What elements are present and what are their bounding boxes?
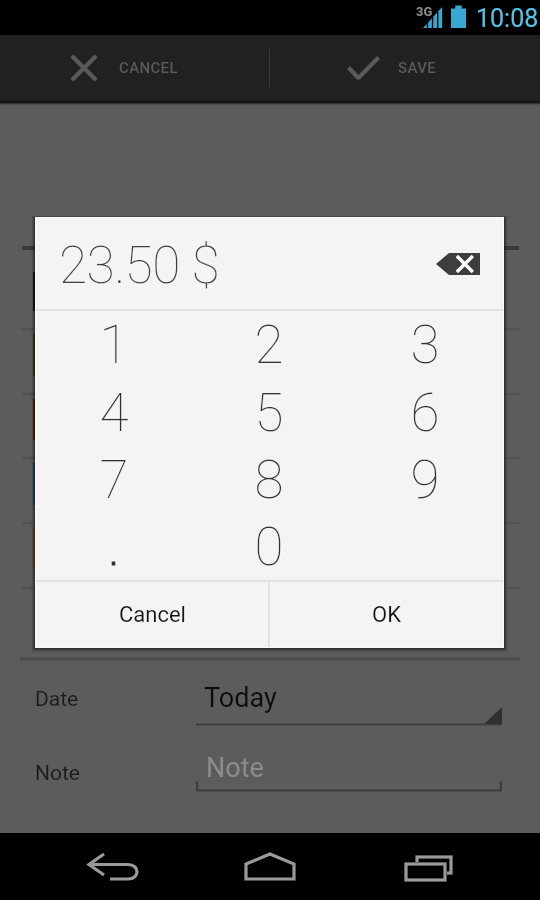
button[interactable]: 3	[347, 311, 503, 379]
button[interactable]	[36, 513, 191, 580]
button[interactable]: 6	[347, 379, 503, 446]
staticText: SAVE	[398, 59, 437, 77]
staticText: CANCEL	[119, 59, 178, 77]
staticText: 8	[254, 449, 284, 511]
staticText: Note	[206, 752, 264, 784]
staticText: 5	[254, 382, 284, 444]
staticText: 0	[254, 516, 284, 578]
button[interactable]: Today	[196, 678, 502, 726]
button[interactable]: Home	[180, 833, 360, 900]
button[interactable]: OK	[270, 582, 503, 647]
button[interactable]: 8	[191, 446, 347, 513]
button[interactable]: 4	[36, 379, 191, 446]
button[interactable]: 1	[36, 311, 191, 379]
staticText: 10:08	[476, 4, 539, 33]
button[interactable]: 5	[191, 379, 347, 446]
button[interactable]: Note	[196, 752, 502, 792]
staticText: 6	[410, 382, 440, 444]
button[interactable]: Backspace	[428, 238, 488, 290]
button[interactable]: SAVE	[270, 35, 540, 101]
staticText: 9	[410, 449, 440, 511]
button[interactable]: Back	[0, 833, 180, 900]
staticText: Date	[35, 687, 79, 712]
staticText: 1	[99, 314, 129, 376]
staticText: 4	[99, 382, 129, 444]
button[interactable]: Recents	[360, 833, 540, 900]
button[interactable]: Cancel	[36, 582, 268, 647]
staticText: 3	[410, 314, 440, 376]
button[interactable]: 9	[347, 446, 503, 513]
button[interactable]: CANCEL	[0, 35, 269, 101]
staticText: Note	[35, 761, 80, 786]
staticText: 23.50 $	[59, 235, 220, 295]
staticText: Today	[204, 682, 277, 714]
staticText: 2	[254, 314, 284, 376]
staticText: Cancel	[119, 602, 186, 628]
button[interactable]: 0	[191, 513, 347, 580]
staticText: 3G	[416, 4, 433, 19]
staticText: OK	[372, 602, 401, 628]
staticText: 7	[99, 449, 129, 511]
button[interactable]: 2	[191, 311, 347, 379]
button[interactable]: 7	[36, 446, 191, 513]
